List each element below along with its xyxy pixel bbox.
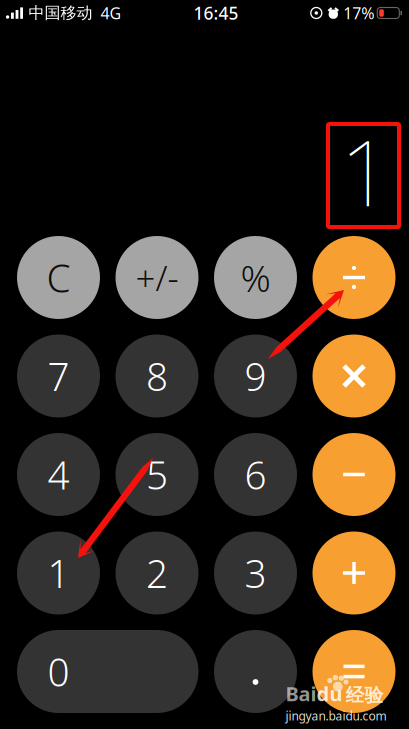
- staticText: 16:45: [193, 1, 238, 24]
- button[interactable]: Divide: [312, 236, 395, 319]
- button[interactable]: Clear: [17, 236, 100, 319]
- button[interactable]: 9: [214, 334, 297, 417]
- button[interactable]: 7: [17, 334, 100, 417]
- button[interactable]: Multiply: [312, 334, 395, 417]
- button[interactable]: Subtract: [312, 433, 395, 516]
- staticText: jingyan.baidu.com: [285, 708, 386, 724]
- staticText: 5: [146, 449, 168, 500]
- staticText: 4: [47, 449, 69, 500]
- button[interactable]: Plus minus: [115, 236, 198, 319]
- staticText: 1: [47, 547, 69, 599]
- staticText: 7: [47, 350, 69, 402]
- staticText: 中国移动: [28, 3, 92, 23]
- button[interactable]: Equals: [312, 630, 395, 713]
- button[interactable]: Percent: [214, 236, 297, 319]
- staticText: %: [240, 253, 270, 302]
- button[interactable]: 5: [115, 433, 198, 516]
- staticText: 6: [244, 449, 266, 500]
- staticText: 0: [47, 646, 69, 697]
- button[interactable]: 0: [17, 630, 198, 713]
- button[interactable]: 8: [115, 334, 198, 417]
- staticText: 4G: [100, 2, 121, 24]
- staticText: 2: [146, 547, 168, 599]
- staticText: 1: [340, 111, 392, 231]
- button[interactable]: 4: [17, 433, 100, 516]
- button[interactable]: Decimal point: [214, 630, 297, 713]
- button[interactable]: 3: [214, 531, 297, 614]
- staticText: 9: [244, 350, 266, 402]
- staticText: 3: [244, 547, 266, 599]
- button[interactable]: 6: [214, 433, 297, 516]
- staticText: 经验: [345, 684, 383, 707]
- staticText: Bai: [285, 680, 316, 707]
- button[interactable]: Add: [312, 531, 395, 614]
- staticText: +/-: [135, 254, 178, 300]
- staticText: du: [316, 680, 342, 707]
- staticText: 17%: [343, 2, 374, 24]
- button[interactable]: 2: [115, 531, 198, 614]
- staticText: 8: [146, 350, 168, 402]
- button[interactable]: 1: [17, 531, 100, 614]
- staticText: C: [46, 252, 70, 303]
